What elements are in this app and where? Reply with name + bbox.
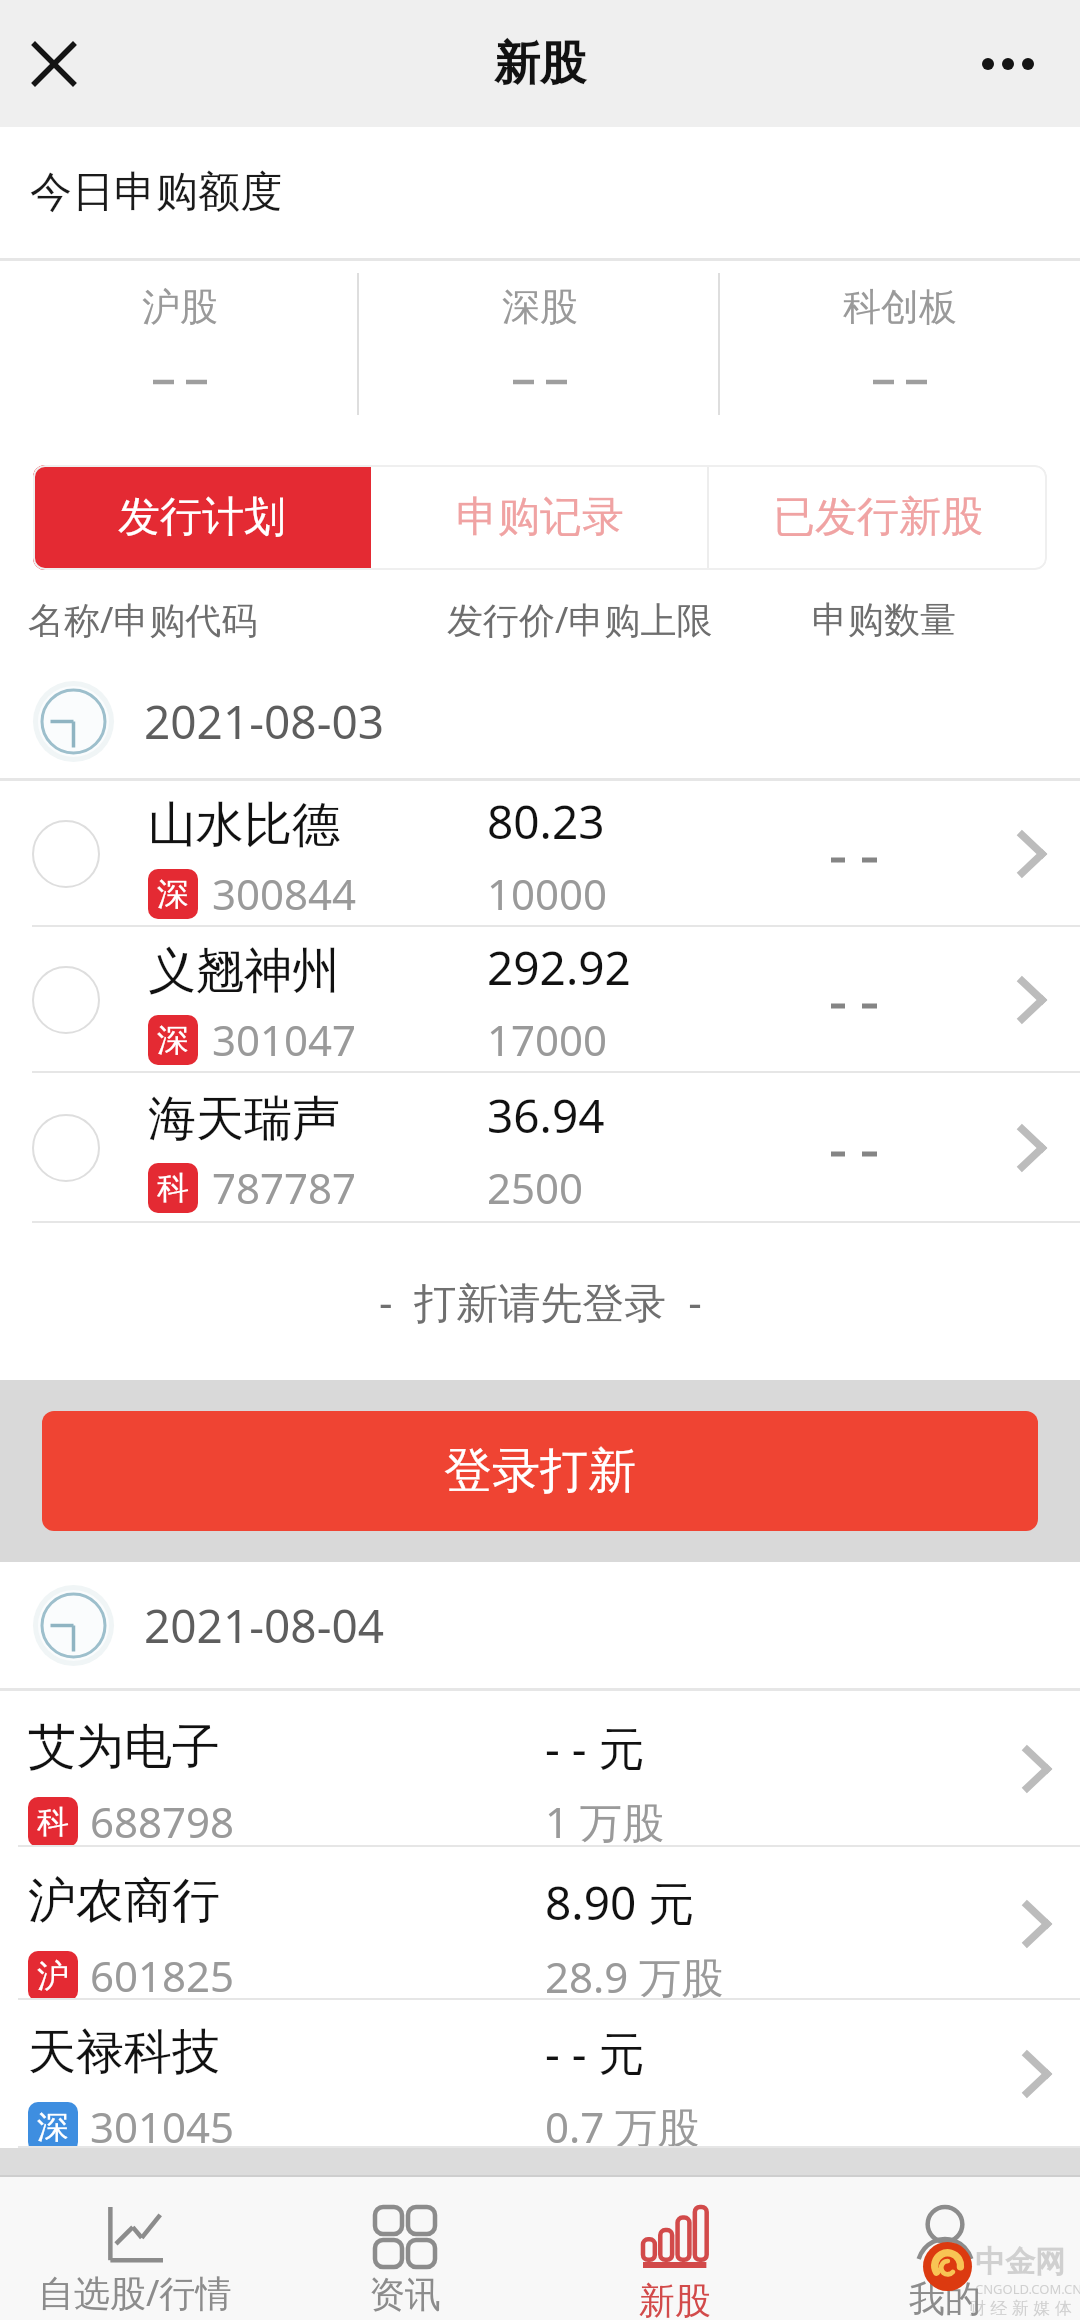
button[interactable]: 自选股/行情 (0, 2177, 270, 2320)
staticText: 海天瑞声 (148, 1089, 340, 1149)
button[interactable]: 海天瑞声 (0, 1073, 1080, 1223)
staticText: 17000 (487, 1011, 608, 1068)
button[interactable]: 申购记录 (371, 465, 709, 570)
button[interactable]: 登录打新 (42, 1411, 1038, 1531)
staticText: 沪 (37, 1956, 69, 1996)
staticText: 科创板 (843, 283, 957, 331)
staticText: 今日申购额度 (30, 166, 282, 219)
button[interactable]: More options (963, 19, 1053, 109)
button[interactable]: 深股 (360, 261, 720, 462)
button[interactable]: 艾为电子 (0, 1691, 1080, 1847)
staticText: 我的 (909, 2276, 981, 2320)
staticText: 名称/申购代码 (28, 595, 258, 644)
staticText: 301047 (212, 1011, 357, 1068)
button[interactable]: 发行计划 (33, 465, 371, 570)
staticText: 36.94 (487, 1084, 605, 1147)
staticText: 新股 (494, 35, 586, 93)
staticText: 申购记录 (456, 491, 624, 544)
staticText: 2021-08-04 (144, 1594, 385, 1657)
staticText: 787787 (212, 1159, 357, 1216)
staticText: - - 元 (545, 2021, 645, 2084)
staticText: 80.23 (487, 790, 605, 853)
staticText: 1 万股 (545, 1793, 664, 1850)
staticText: 天禄科技 (28, 2022, 220, 2082)
button[interactable]: Close (6, 16, 102, 112)
staticText: 科 (157, 1168, 189, 1208)
staticText: 已发行新股 (773, 491, 983, 544)
staticText: 0.7 万股 (545, 2098, 700, 2155)
staticText: 2500 (487, 1159, 584, 1216)
staticText: 2021-08-03 (144, 690, 385, 753)
button[interactable]: 义翘神州 (0, 927, 1080, 1073)
button[interactable]: 新股 (540, 2177, 810, 2320)
staticText: 300844 (212, 865, 357, 922)
staticText: 自选股/行情 (38, 2268, 232, 2317)
staticText: 28.9 万股 (545, 1948, 724, 2005)
staticText: 深 (157, 874, 189, 914)
staticText: 财 经 新 媒 体 (969, 2296, 1072, 2319)
staticText: 科 (37, 1802, 69, 1842)
button[interactable]: 资讯 (270, 2177, 540, 2320)
staticText: 艾为电子 (28, 1717, 220, 1777)
staticText: 601825 (90, 1947, 235, 2004)
staticText: 沪农商行 (28, 1871, 220, 1931)
staticText: - 打新请先登录 - (379, 1273, 702, 1330)
staticText: 8.90 元 (545, 1871, 695, 1934)
staticText: 深 (157, 1020, 189, 1060)
staticText: 中金网 (975, 2243, 1065, 2281)
staticText: 申购数量 (812, 597, 956, 642)
staticText: 沪股 (142, 283, 218, 331)
button[interactable]: 山水比德 (0, 781, 1080, 927)
staticText: 301045 (90, 2098, 235, 2155)
staticText: CNGOLD.COM.CN (975, 2280, 1080, 2298)
staticText: 义翘神州 (148, 941, 340, 1001)
staticText: 深 (37, 2107, 69, 2147)
button[interactable]: 科创板 (720, 261, 1080, 462)
staticText: 292.92 (487, 936, 631, 999)
staticText: 新股 (639, 2278, 711, 2320)
button[interactable]: 沪农商行 (0, 1847, 1080, 2000)
staticText: 深股 (502, 283, 578, 331)
staticText: 登录打新 (444, 1441, 636, 1501)
staticText: 发行计划 (118, 491, 286, 544)
staticText: - - 元 (545, 1716, 645, 1779)
staticText: 发行价/申购上限 (447, 595, 713, 644)
button[interactable]: 已发行新股 (709, 465, 1047, 570)
staticText: 山水比德 (148, 795, 340, 855)
staticText: 688798 (90, 1793, 235, 1850)
button[interactable]: 我的 (810, 2177, 1080, 2320)
button[interactable]: 沪股 (0, 261, 360, 462)
staticText: 资讯 (369, 2272, 441, 2317)
staticText: 10000 (487, 865, 608, 922)
button[interactable]: 天禄科技 (0, 2000, 1080, 2148)
